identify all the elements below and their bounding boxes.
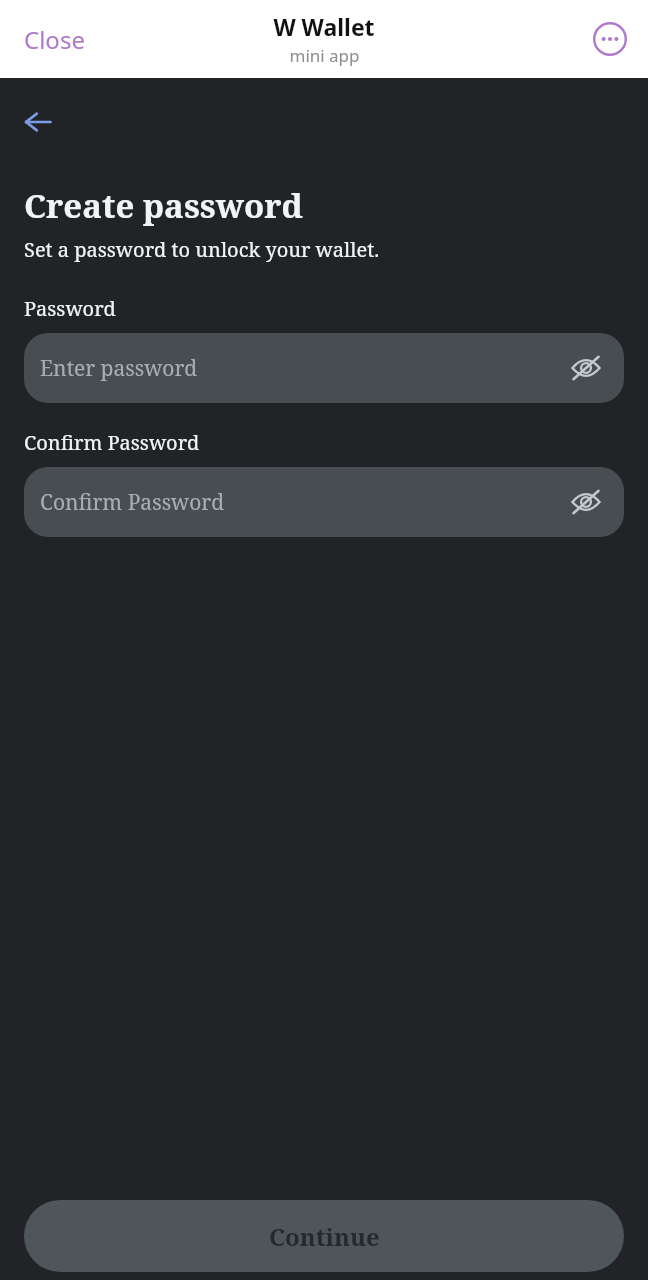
staticText: Confirm Password [40, 488, 560, 517]
staticText: Continue [269, 1220, 380, 1253]
button[interactable]: Back [10, 94, 66, 150]
button[interactable]: Show password [560, 476, 612, 528]
staticText: W Wallet [273, 11, 375, 42]
button[interactable]: Enter password [24, 333, 624, 403]
button[interactable]: Show password [560, 342, 612, 394]
button[interactable]: Close [10, 15, 99, 64]
staticText: Confirm Password [24, 429, 200, 456]
button[interactable]: Continue [24, 1200, 624, 1272]
staticText: Enter password [40, 354, 560, 383]
staticText: Close [24, 23, 85, 56]
staticText: Create password [24, 183, 303, 228]
staticText: Password [24, 295, 116, 322]
staticText: Set a password to unlock your wallet. [24, 236, 380, 263]
staticText: mini app [289, 44, 360, 67]
button[interactable]: More options [586, 15, 634, 63]
button[interactable]: Confirm Password [24, 467, 624, 537]
